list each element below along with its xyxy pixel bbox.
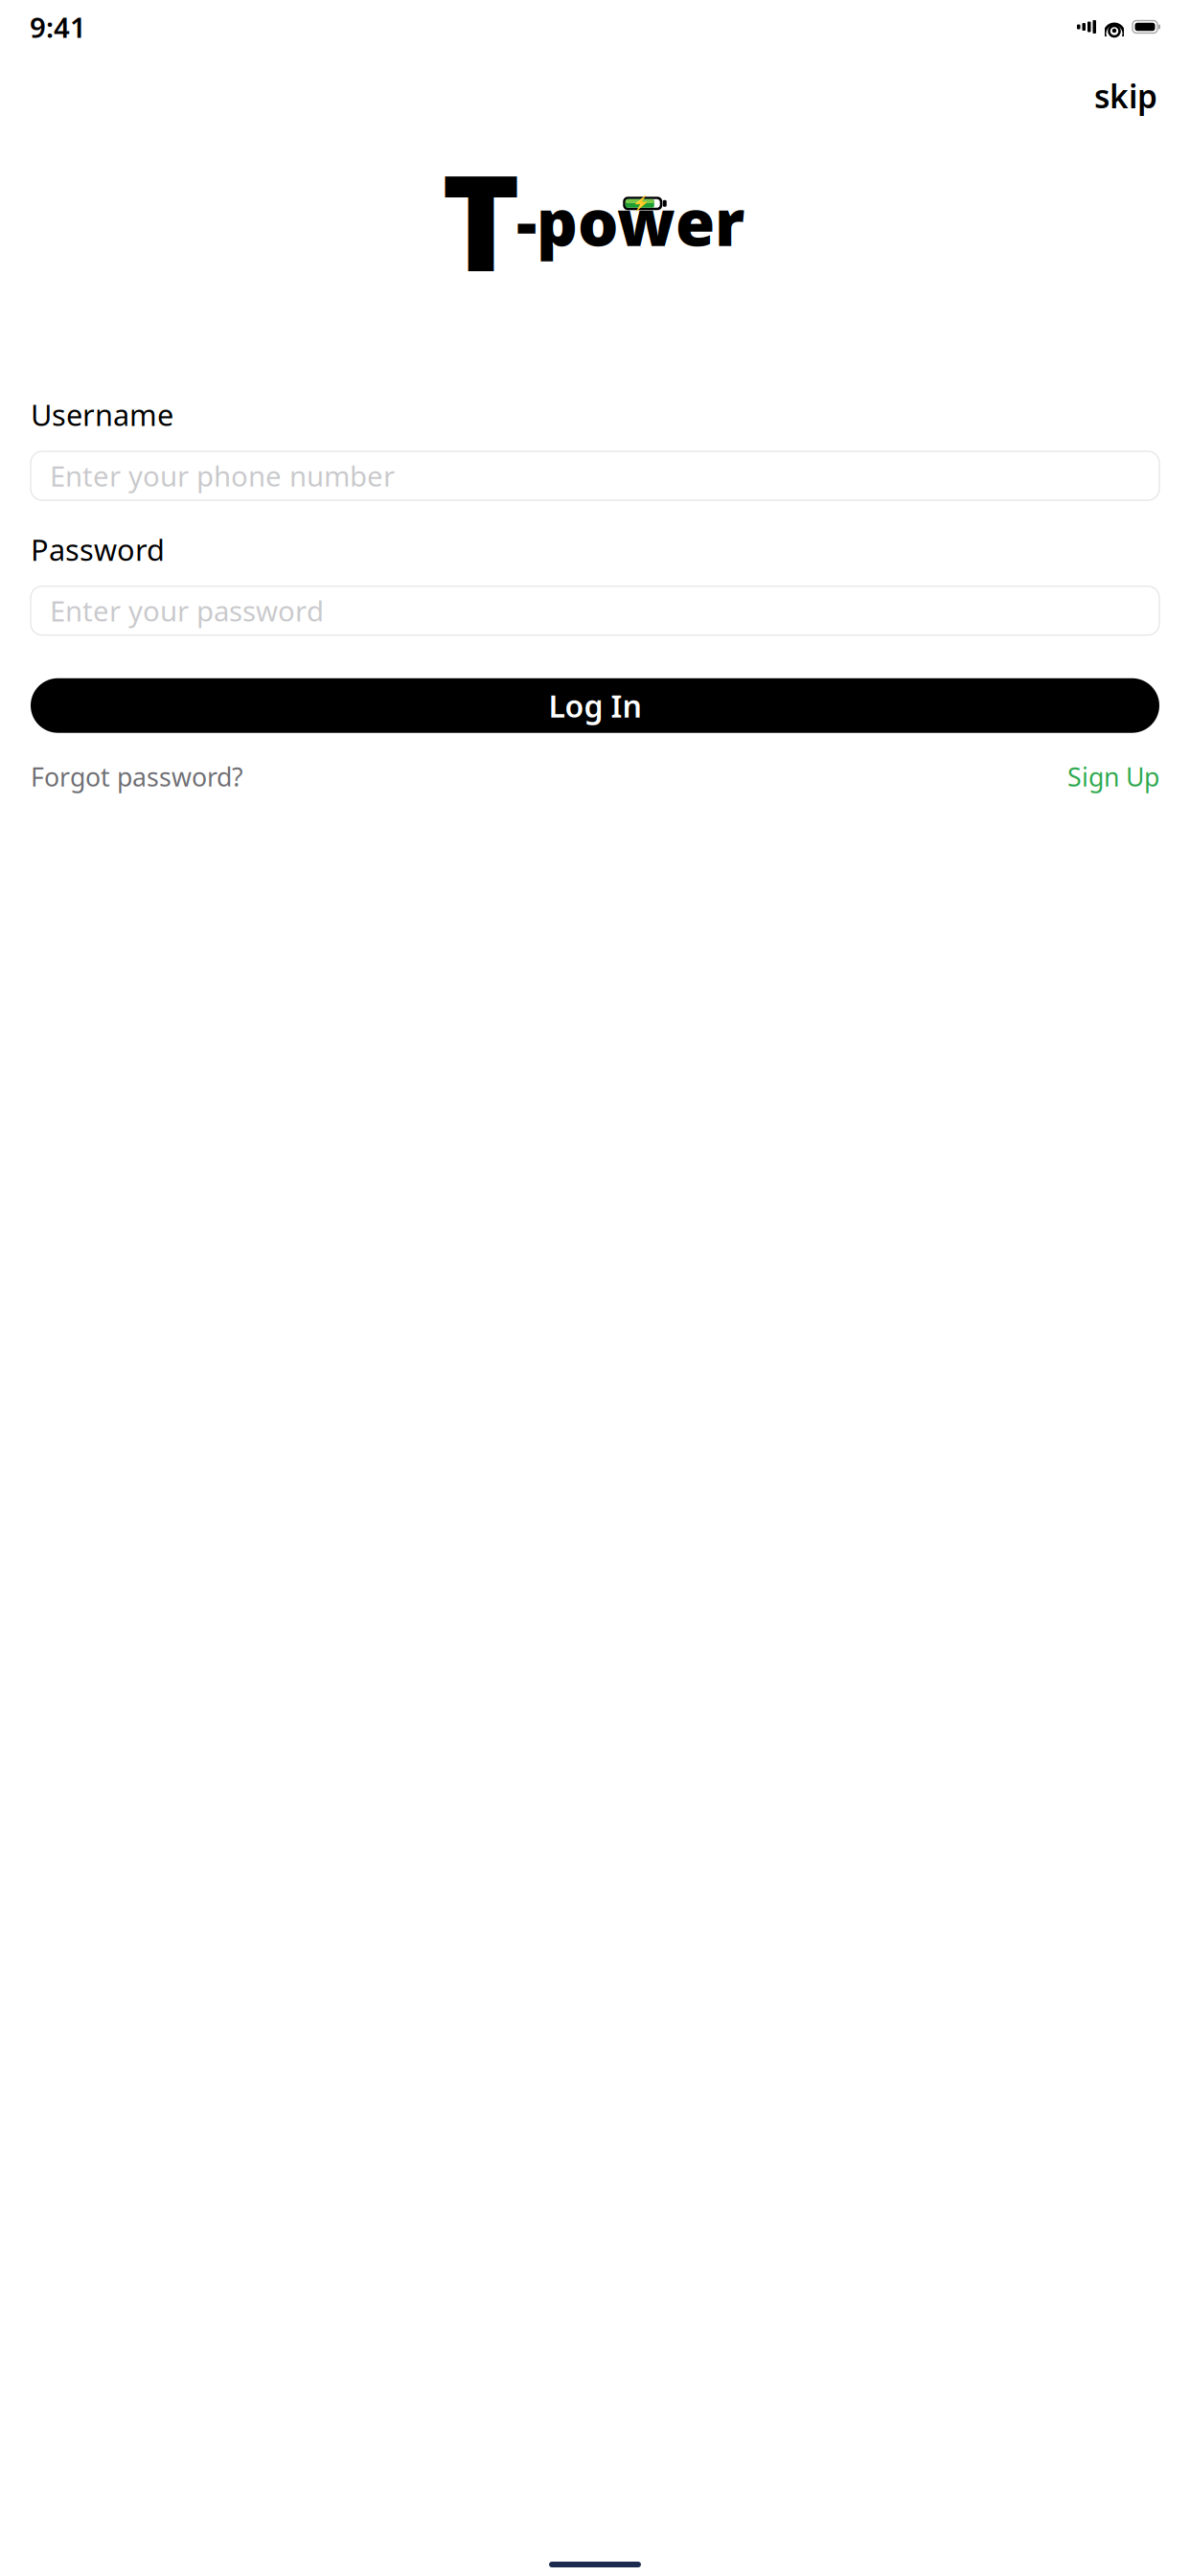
button[interactable]: Enter your password [31, 586, 1159, 635]
staticText: T [442, 131, 520, 308]
button[interactable]: Log In [31, 678, 1159, 733]
staticText: -power [516, 179, 744, 264]
button[interactable]: Enter your phone number [31, 451, 1159, 500]
staticText: Enter your password [50, 592, 324, 629]
staticText: Username [31, 395, 173, 434]
staticText: Password [31, 530, 165, 569]
button[interactable]: skip [1087, 69, 1165, 123]
staticText: skip [1094, 75, 1157, 117]
staticText: 9:41 [30, 8, 86, 46]
staticText: ⚡ [632, 195, 649, 212]
button[interactable]: Forgot password? [31, 754, 243, 799]
staticText: Sign Up [1067, 760, 1159, 794]
button[interactable]: Sign Up [1067, 754, 1159, 799]
staticText: Forgot password? [31, 760, 243, 794]
staticText: Log In [549, 685, 641, 726]
staticText: Enter your phone number [50, 457, 395, 494]
